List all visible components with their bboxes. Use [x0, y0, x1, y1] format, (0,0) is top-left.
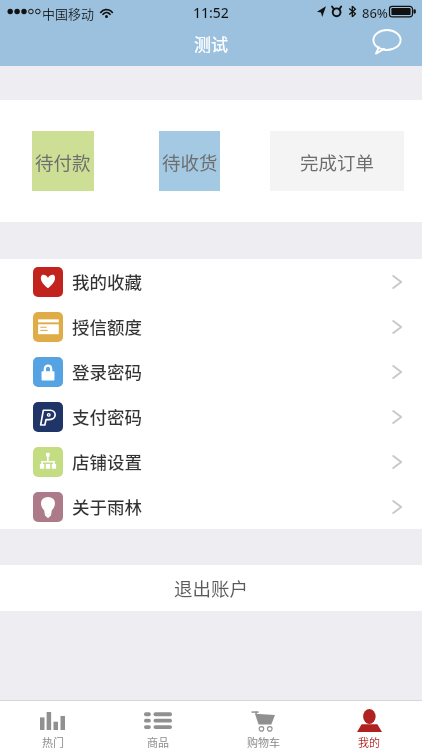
staticText: 支付密码: [72, 404, 142, 429]
staticText: 11:52: [193, 3, 229, 22]
button[interactable]: 授信额度: [0, 304, 422, 349]
staticText: 我的: [358, 734, 380, 750]
button[interactable]: 店铺设置: [0, 439, 422, 484]
staticText: 热门: [42, 734, 64, 750]
button[interactable]: 待付款: [32, 131, 94, 191]
staticText: 退出账户: [174, 575, 249, 602]
button[interactable]: 我的: [316, 701, 422, 750]
button[interactable]: 商品: [105, 701, 210, 750]
button[interactable]: 支付密码: [0, 394, 422, 439]
staticText: 我的收藏: [72, 269, 142, 294]
staticText: 登录密码: [72, 359, 142, 384]
staticText: 测试: [194, 31, 228, 56]
button[interactable]: Messages: [367, 25, 407, 65]
button[interactable]: 我的收藏: [0, 259, 422, 304]
button[interactable]: 登录密码: [0, 349, 422, 394]
staticText: 店铺设置: [72, 449, 142, 474]
staticText: 86%: [362, 4, 388, 22]
button[interactable]: 退出账户: [0, 565, 422, 611]
staticText: 中国移动: [42, 4, 95, 23]
staticText: 待收货: [162, 149, 218, 176]
staticText: 关于雨林: [72, 494, 142, 519]
button[interactable]: 购物车: [210, 701, 316, 750]
button[interactable]: 热门: [0, 701, 105, 750]
staticText: 购物车: [247, 734, 280, 750]
staticText: 商品: [147, 734, 169, 750]
button[interactable]: 待收货: [159, 131, 220, 191]
staticText: 授信额度: [72, 314, 142, 339]
button[interactable]: 完成订单: [270, 131, 404, 191]
staticText: 待付款: [35, 149, 91, 176]
button[interactable]: 关于雨林: [0, 484, 422, 529]
staticText: 完成订单: [300, 149, 375, 176]
